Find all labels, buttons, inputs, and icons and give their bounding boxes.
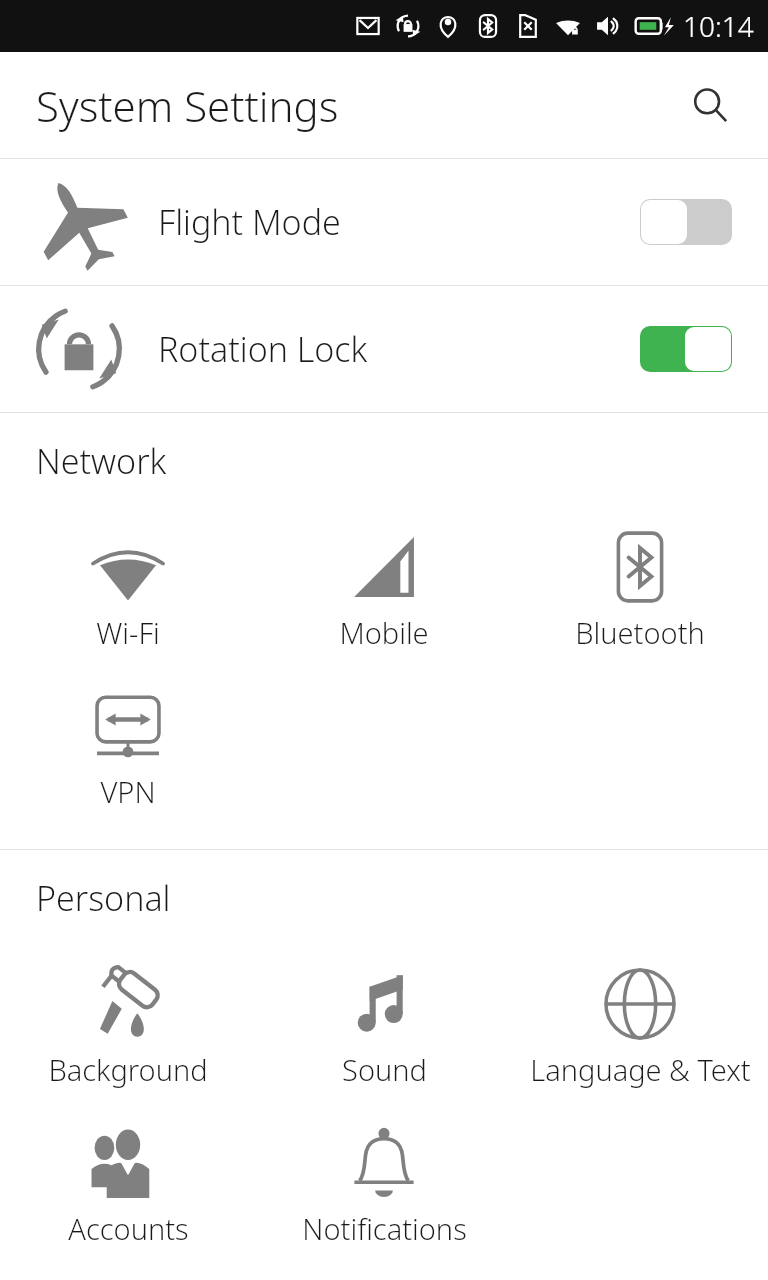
staticText: System Settings [36, 77, 339, 134]
staticText: Notifications [302, 1209, 467, 1248]
staticText: Language & Text [530, 1050, 751, 1089]
button[interactable]: Accounts [0, 1105, 256, 1264]
button[interactable]: Mobile [256, 509, 512, 668]
staticText: Mobile [339, 613, 429, 652]
staticText: Flight Mode [158, 199, 341, 245]
button[interactable]: Search [682, 77, 738, 133]
button[interactable]: Flight Mode [0, 159, 768, 285]
button[interactable]: Bluetooth [512, 509, 768, 668]
button[interactable]: Wi-Fi [0, 509, 256, 668]
staticText: Personal [36, 875, 171, 921]
staticText: Rotation Lock [158, 326, 368, 372]
staticText: Accounts [68, 1209, 189, 1248]
button[interactable]: Background [0, 946, 256, 1105]
button[interactable]: VPN [0, 668, 256, 827]
button[interactable]: Language & Text [512, 946, 768, 1105]
button[interactable]: Sound [256, 946, 512, 1105]
staticText: Wi-Fi [96, 613, 160, 652]
staticText: Network [36, 438, 167, 484]
staticText: 10:14 [683, 7, 754, 45]
button[interactable]: Notifications [256, 1105, 512, 1264]
button[interactable]: Rotation Lock [0, 286, 768, 412]
staticText: VPN [100, 772, 156, 811]
staticText: Sound [342, 1050, 427, 1089]
staticText: Bluetooth [575, 613, 705, 652]
staticText: Background [48, 1050, 208, 1089]
